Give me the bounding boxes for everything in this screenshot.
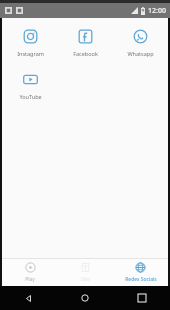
staticText: Facebook [73, 50, 98, 57]
button[interactable]: Instagram [2, 26, 58, 59]
staticText: Play [25, 276, 35, 283]
button[interactable]: Whatsapp [113, 26, 168, 59]
staticText: Instagram [17, 50, 44, 57]
staticText: Site [81, 276, 90, 283]
button[interactable]: Recent apps [113, 286, 170, 310]
staticText: 12:00 [148, 6, 166, 16]
staticText: Redes Sociais [125, 276, 157, 283]
staticText: YouTube [19, 93, 42, 100]
button[interactable]: Play [2, 259, 58, 286]
button[interactable]: Facebook [58, 26, 113, 59]
button[interactable]: Redes Sociais [113, 259, 168, 286]
button[interactable]: Back [0, 286, 56, 310]
button[interactable]: YouTube [2, 69, 58, 102]
staticText: Whatsapp [127, 50, 154, 57]
button[interactable]: Home [56, 286, 113, 310]
